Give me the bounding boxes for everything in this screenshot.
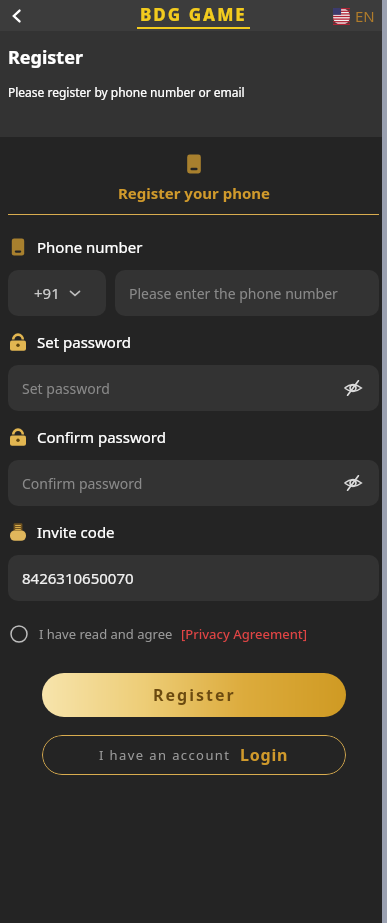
button[interactable]: Please enter the phone number — [115, 270, 379, 316]
button[interactable]: 8426310650070 — [8, 555, 379, 601]
button[interactable]: Show password — [341, 471, 365, 495]
staticText: Invite code — [37, 522, 115, 542]
staticText: Phone number — [37, 237, 143, 257]
staticText: Set password — [37, 332, 132, 352]
staticText: Confirm password — [22, 474, 143, 493]
button[interactable]: EN — [333, 6, 375, 26]
staticText: 8426310650070 — [22, 568, 134, 588]
button[interactable]: Confirm password — [8, 460, 379, 506]
staticText: Register your phone — [118, 183, 270, 203]
staticText: I have read and agree — [39, 625, 173, 643]
button[interactable]: Show password — [341, 376, 365, 400]
button[interactable]: I have an account — [42, 735, 346, 775]
staticText: EN — [355, 6, 375, 26]
staticText: Register — [8, 45, 83, 70]
staticText: +91 — [34, 283, 60, 303]
staticText: I have an account — [99, 746, 231, 764]
staticText: [Privacy Agreement] — [181, 625, 308, 643]
button[interactable]: Register your phone — [94, 153, 294, 203]
button[interactable]: +91 — [8, 270, 106, 316]
button[interactable]: [Privacy Agreement] — [181, 625, 308, 643]
staticText: Login — [240, 744, 289, 766]
staticText: Please enter the phone number — [129, 284, 338, 303]
button[interactable]: Set password — [8, 365, 379, 411]
staticText: Register — [153, 684, 236, 706]
button[interactable]: Register — [42, 673, 346, 717]
button[interactable]: Back — [3, 2, 31, 30]
staticText: BDG GAME — [140, 3, 247, 26]
staticText: Confirm password — [37, 427, 166, 447]
staticText: Please register by phone number or email — [8, 84, 245, 100]
button[interactable]: Agree to privacy agreement — [6, 621, 32, 647]
staticText: Set password — [22, 379, 110, 398]
